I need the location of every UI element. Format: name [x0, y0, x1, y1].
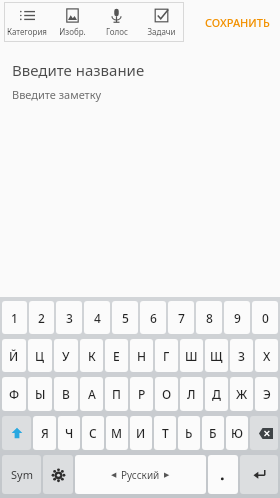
staticText: Ю	[231, 425, 244, 441]
other: Задачи	[154, 8, 169, 23]
other: Изображение	[65, 8, 80, 23]
staticText: Б	[209, 425, 217, 441]
staticText: 6	[150, 310, 157, 326]
staticText: Щ	[210, 348, 223, 364]
button[interactable]: СОХРАНИТЬ	[201, 9, 274, 36]
staticText: Ч	[65, 425, 74, 441]
button[interactable]: 8	[196, 301, 222, 334]
button[interactable]: Точка	[208, 455, 238, 494]
staticText: Ь	[185, 425, 193, 441]
button[interactable]: Ь	[178, 416, 200, 450]
button[interactable]: К	[80, 339, 103, 372]
button[interactable]: М	[106, 416, 128, 450]
button[interactable]: Ш	[180, 339, 203, 372]
button[interactable]: С	[82, 416, 104, 450]
staticText: Изобр.	[59, 26, 86, 37]
button[interactable]: 5	[112, 301, 138, 334]
staticText: 0	[262, 310, 269, 326]
button[interactable]: Изображение	[50, 2, 94, 42]
button[interactable]: 1	[2, 301, 27, 334]
button[interactable]: Я	[33, 416, 56, 450]
button[interactable]: А	[80, 377, 103, 411]
staticText: Ш	[185, 348, 198, 364]
other: Голос	[109, 8, 124, 23]
button[interactable]: Д	[205, 377, 228, 411]
button[interactable]: И	[130, 416, 152, 450]
button[interactable]: О	[155, 377, 178, 411]
button[interactable]: 9	[224, 301, 250, 334]
staticText: В	[62, 386, 70, 402]
button[interactable]: Ф	[2, 377, 26, 411]
staticText: Введите заметку	[12, 87, 102, 102]
button[interactable]: Л	[180, 377, 203, 411]
button[interactable]: 2	[29, 301, 54, 334]
button[interactable]: У	[54, 339, 78, 372]
staticText: Ц	[35, 348, 45, 364]
button[interactable]: Н	[130, 339, 153, 372]
staticText: Я	[41, 425, 49, 441]
staticText: Категория	[7, 26, 47, 37]
button[interactable]: Shift	[2, 416, 31, 450]
staticText: Ы	[35, 386, 46, 402]
staticText: Е	[113, 348, 120, 364]
staticText: Задачи	[147, 26, 176, 37]
button[interactable]: Г	[155, 339, 178, 372]
staticText: Т	[162, 425, 169, 441]
staticText: Ф	[9, 386, 20, 402]
staticText: 4	[94, 310, 101, 326]
staticText: Й	[9, 348, 19, 364]
staticText: СОХРАНИТЬ	[205, 15, 270, 30]
staticText: О	[162, 386, 172, 402]
staticText: 9	[234, 310, 241, 326]
button[interactable]: Э	[255, 377, 278, 411]
button[interactable]: Голос	[94, 2, 139, 42]
button[interactable]: 0	[252, 301, 278, 334]
button[interactable]: 3	[56, 301, 82, 334]
button[interactable]: Ц	[28, 339, 52, 372]
button[interactable]: З	[230, 339, 253, 372]
button[interactable]: Ввод	[240, 455, 278, 494]
staticText: Введите название	[12, 60, 145, 80]
staticText: 5	[122, 310, 129, 326]
button[interactable]: 7	[168, 301, 194, 334]
staticText: Г	[163, 348, 170, 364]
button[interactable]: Б	[202, 416, 224, 450]
staticText: 7	[178, 310, 185, 326]
staticText: А	[88, 386, 96, 402]
button[interactable]: Пробел	[75, 455, 206, 494]
button[interactable]: Е	[105, 339, 128, 372]
button[interactable]: Ю	[226, 416, 248, 450]
button[interactable]: Р	[130, 377, 153, 411]
staticText: И	[136, 425, 146, 441]
staticText: П	[112, 386, 121, 402]
button[interactable]: Х	[255, 339, 278, 372]
staticText: 1	[11, 310, 18, 326]
staticText: Н	[137, 348, 147, 364]
button[interactable]: В	[54, 377, 78, 411]
button[interactable]: Ж	[230, 377, 253, 411]
button[interactable]: Настройки	[43, 455, 73, 494]
staticText: Ж	[236, 386, 248, 402]
button[interactable]: Ы	[28, 377, 52, 411]
staticText: М	[111, 425, 123, 441]
staticText: Д	[212, 386, 221, 402]
staticText: К	[88, 348, 96, 364]
button[interactable]: Т	[154, 416, 176, 450]
button[interactable]: Категория	[4, 2, 50, 42]
staticText: 8	[206, 310, 213, 326]
button[interactable]: Удалить	[250, 416, 278, 450]
staticText: ◀	[111, 471, 117, 479]
button[interactable]: Задачи	[139, 2, 184, 42]
button[interactable]: Щ	[205, 339, 228, 372]
staticText: Х	[263, 348, 271, 364]
other: Категория	[20, 8, 35, 23]
staticText: У	[62, 348, 70, 364]
button[interactable]: 6	[140, 301, 166, 334]
button[interactable]: Й	[2, 339, 26, 372]
button[interactable]: Sym	[2, 455, 41, 494]
staticText: Л	[187, 386, 196, 402]
button[interactable]: 4	[84, 301, 110, 334]
staticText: Р	[138, 386, 146, 402]
button[interactable]: П	[105, 377, 128, 411]
button[interactable]: Ч	[58, 416, 80, 450]
